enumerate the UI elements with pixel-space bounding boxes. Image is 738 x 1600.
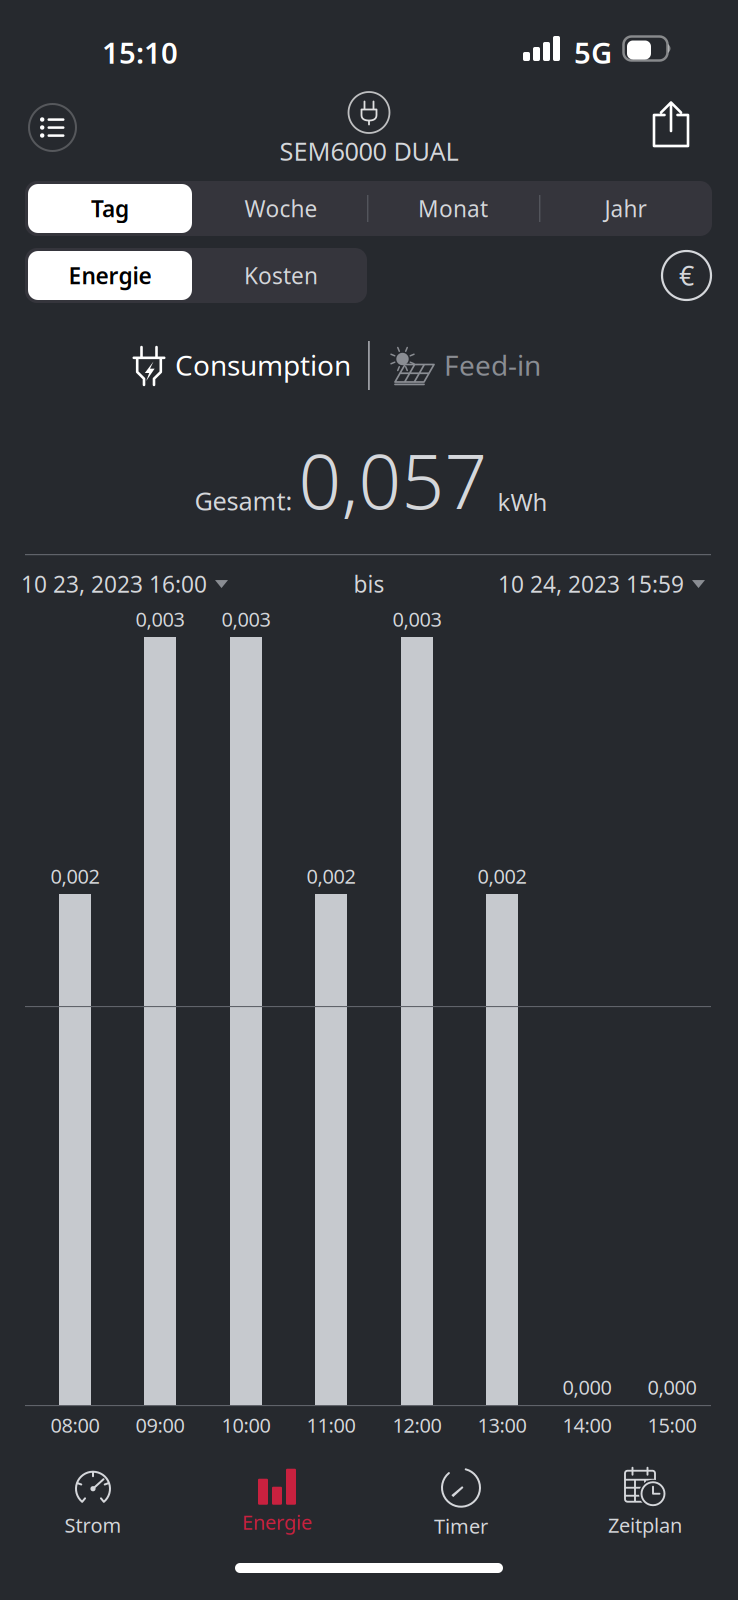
button[interactable]: 10 23, 2023 16:00 [21,569,229,599]
staticText: SEM6000 DUAL [279,134,458,168]
button[interactable]: Energie [25,248,195,303]
button[interactable]: Menu [29,104,76,151]
staticText: 0,003 [392,606,441,632]
button[interactable]: Zeitplan [553,1456,737,1548]
staticText: Monat [418,193,488,223]
staticText: 13:00 [477,1412,526,1438]
staticText: 15:10 [102,33,178,72]
button[interactable]: 10 24, 2023 15:59 [498,569,706,599]
staticText: bis [353,569,384,599]
button[interactable]: Jahr [539,181,712,236]
staticText: 0,003 [221,606,270,632]
staticText: 0,002 [50,863,99,889]
staticText: 0,000 [647,1374,696,1400]
staticText: kWh [497,486,547,518]
button[interactable]: Tag [25,181,195,236]
button[interactable]: SEM6000 DUAL [219,92,519,168]
staticText: 10 23, 2023 16:00 [21,569,207,599]
button[interactable]: Monat [367,181,539,236]
button[interactable]: Consumption [132,340,351,392]
staticText: Zeitplan [608,1512,682,1538]
staticText: 0,003 [135,606,184,632]
staticText: 0,002 [306,863,355,889]
button[interactable]: Energie [185,1456,369,1548]
staticText: 09:00 [135,1412,184,1438]
staticText: 10 24, 2023 15:59 [498,569,684,599]
button[interactable]: Share [652,100,690,148]
staticText: 14:00 [562,1412,611,1438]
staticText: Woche [244,193,317,223]
button[interactable]: Currency [662,251,711,300]
staticText: 0,000 [562,1374,611,1400]
staticText: Gesamt: [194,484,292,517]
staticText: Jahr [604,193,646,223]
button[interactable]: Timer [369,1456,553,1548]
button[interactable]: Strom [1,1456,185,1548]
staticText: 5G [574,33,612,72]
staticText: Kosten [244,260,318,290]
staticText: € [679,258,694,293]
staticText: Timer [434,1513,488,1539]
staticText: 0,057 [298,430,487,530]
staticText: Strom [64,1512,121,1538]
staticText: Tag [91,193,129,223]
staticText: Energie [242,1509,312,1535]
staticText: 10:00 [221,1412,270,1438]
staticText: Feed-in [444,346,541,384]
staticText: Consumption [175,346,351,384]
button[interactable]: Kosten [195,248,367,303]
staticText: 12:00 [392,1412,441,1438]
staticText: Energie [68,260,151,290]
button[interactable]: Woche [195,181,367,236]
staticText: 15:00 [647,1412,696,1438]
staticText: 0,002 [477,863,526,889]
button[interactable]: Feed-in [386,340,541,392]
staticText: 08:00 [50,1412,99,1438]
staticText: 11:00 [306,1412,355,1438]
